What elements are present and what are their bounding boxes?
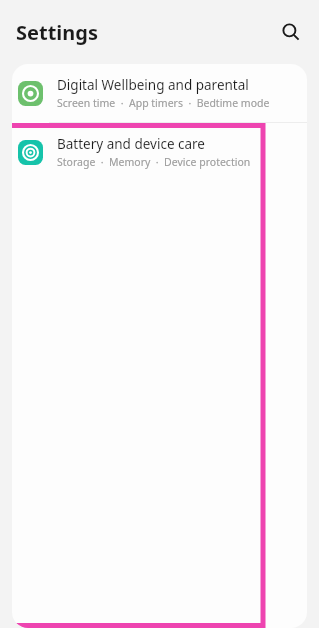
staticText: Storage · Memory · Device protection bbox=[57, 155, 251, 169]
button[interactable]: Battery and device care bbox=[12, 123, 307, 181]
button[interactable]: Digital Wellbeing and parental controls bbox=[12, 64, 307, 122]
staticText: Digital Wellbeing and parental controls bbox=[57, 76, 297, 94]
button[interactable]: Search bbox=[273, 14, 309, 50]
staticText: Screen time · App timers · Bedtime mode bbox=[57, 96, 270, 110]
staticText: Settings bbox=[16, 19, 98, 46]
staticText: Battery and device care bbox=[57, 135, 205, 153]
